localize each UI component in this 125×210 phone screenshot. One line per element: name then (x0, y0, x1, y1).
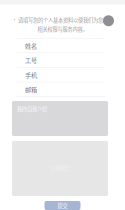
staticText: 姓名 (25, 41, 37, 50)
staticText: · 请填写您的个人基本资料以便我们为您开通 (12, 16, 113, 24)
staticText: 手机 (25, 70, 37, 79)
button[interactable]: 展开 (103, 15, 114, 26)
button[interactable]: 提交 (44, 201, 80, 210)
button[interactable]: 手机 (17, 68, 105, 82)
staticText: 我的自我介绍 (17, 105, 47, 112)
staticText: 相关权限与服务内容。 (37, 25, 87, 33)
button[interactable]: 邮箱 (17, 82, 105, 96)
button[interactable]: 工号 (17, 53, 105, 67)
staticText: 提交 (57, 202, 67, 209)
staticText: 工号 (25, 56, 37, 65)
staticText: 邮箱 (25, 85, 37, 94)
button[interactable]: 姓名 (17, 39, 105, 53)
